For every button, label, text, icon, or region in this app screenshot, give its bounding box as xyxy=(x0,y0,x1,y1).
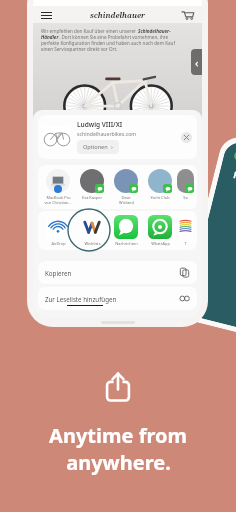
staticText: . Dort können Sie eine Probefahrt vorneh… xyxy=(59,34,169,40)
button[interactable]: Zoom image xyxy=(39,129,51,141)
staticText: schindelhauer xyxy=(90,10,146,20)
button[interactable]: Nachrichten xyxy=(109,215,143,246)
staticText: Ludwig VIII/XI xyxy=(77,120,123,129)
staticText: einen Servicepartner direkt vor Ort. xyxy=(41,46,118,52)
button[interactable]: Cart xyxy=(181,8,194,21)
staticText: Kopieren xyxy=(45,269,72,277)
staticText: Zur Leseliste hinzufügen xyxy=(45,295,117,303)
other: Share xyxy=(105,372,131,402)
staticText: Schindelhauer- xyxy=(138,28,171,34)
staticText: schindelhauerbikes.com xyxy=(77,130,137,137)
staticText: von Christian... xyxy=(44,200,72,205)
button[interactable]: Zur Leseliste hinzufügen xyxy=(38,287,197,310)
button[interactable]: Kopieren xyxy=(38,261,197,284)
staticText: Yacht Club xyxy=(150,195,170,200)
staticText: Anytime from xyxy=(49,422,187,449)
staticText: Wieland xyxy=(119,200,134,205)
staticText: Eva Kasper xyxy=(82,195,102,200)
button[interactable]: Dawi xyxy=(109,169,143,205)
button[interactable]: Menu xyxy=(41,9,53,21)
staticText: Sa xyxy=(183,195,188,200)
button[interactable]: Eva Kasper xyxy=(75,169,109,200)
button[interactable]: Yacht Club xyxy=(143,169,177,200)
button[interactable]: WhatsApp xyxy=(143,215,177,246)
staticText: Händler xyxy=(41,34,59,40)
staticText: Dawi xyxy=(121,195,131,200)
staticText: F xyxy=(232,168,236,181)
staticText: AirDrop xyxy=(51,241,66,246)
staticText: Nachrichten xyxy=(115,241,138,246)
staticText: WhatsApp xyxy=(151,241,170,246)
button[interactable]: Sa xyxy=(177,169,194,200)
button[interactable]: Optionen xyxy=(77,140,119,154)
staticText: perfekte Konfiguration finden und haben … xyxy=(41,40,175,46)
staticText: Wir empfehlen den Kauf über einen unsere… xyxy=(41,28,138,34)
button[interactable]: MacBook Pro xyxy=(41,169,75,205)
staticText: Optionen xyxy=(83,143,108,151)
button[interactable]: Previous xyxy=(191,49,202,75)
staticText: ‹ xyxy=(195,55,199,70)
button[interactable]: Wishlists xyxy=(75,215,109,246)
button[interactable]: T xyxy=(177,215,194,246)
button[interactable]: Close xyxy=(181,132,192,143)
staticText: anywhere. xyxy=(66,449,171,476)
staticText: › xyxy=(111,143,113,151)
staticText: Wishlists xyxy=(84,241,101,246)
staticText: T xyxy=(184,241,187,246)
button[interactable]: AirDrop xyxy=(41,215,75,246)
staticText: MacBook Pro xyxy=(46,195,71,200)
